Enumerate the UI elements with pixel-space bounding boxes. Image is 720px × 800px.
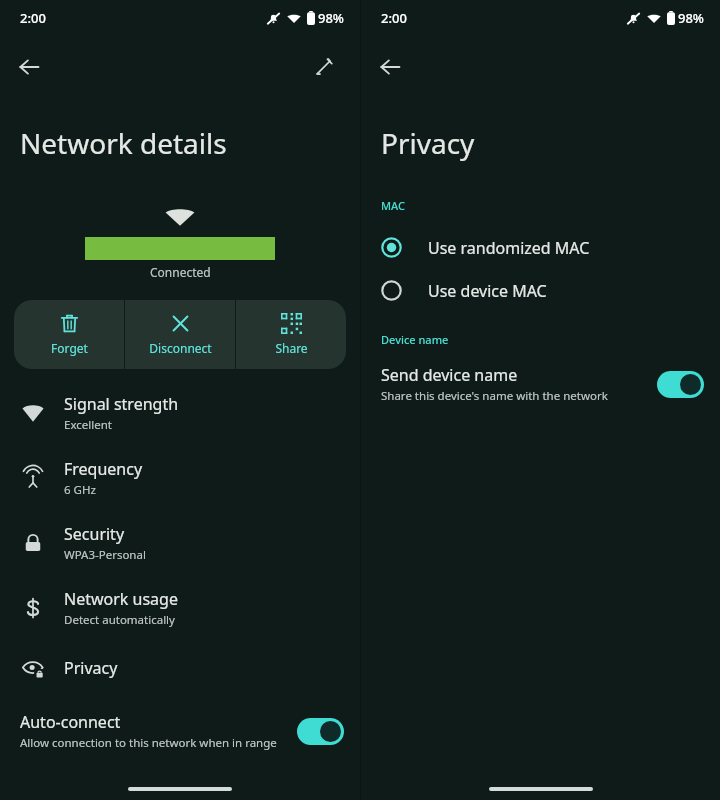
staticText: Security <box>64 523 125 545</box>
staticText: Share this device's name with the networ… <box>381 388 608 404</box>
staticText: Auto-connect <box>20 711 121 733</box>
staticText: Frequency <box>64 458 143 480</box>
staticText: Privacy <box>381 124 475 162</box>
staticText: 2:00 <box>381 9 407 27</box>
button[interactable]: Security <box>0 510 360 575</box>
staticText: Privacy <box>64 657 118 679</box>
staticText: Send device name <box>381 364 518 386</box>
staticText: Disconnect <box>149 340 212 356</box>
staticText: 6 GHz <box>64 482 96 498</box>
button[interactable]: Edit <box>302 45 346 89</box>
staticText: MAC <box>381 198 406 213</box>
staticText: 2:00 <box>20 9 46 27</box>
button[interactable]: Toggle on <box>657 371 704 398</box>
staticText: 98% <box>318 9 344 27</box>
staticText: Device name <box>381 332 449 347</box>
staticText: Use device MAC <box>428 280 547 302</box>
staticText: Excellent <box>64 417 112 433</box>
button[interactable]: Frequency <box>0 445 360 510</box>
button[interactable]: Privacy <box>0 640 360 696</box>
staticText: Forget <box>51 340 88 356</box>
staticText: Allow connection to this network when in… <box>20 735 277 751</box>
staticText: 98% <box>678 9 704 27</box>
button[interactable]: Use device MAC <box>361 269 720 312</box>
button[interactable]: Auto-connect <box>0 702 360 760</box>
button[interactable]: Share <box>236 300 346 369</box>
button[interactable]: Back <box>368 45 412 89</box>
button[interactable]: Disconnect <box>125 300 235 369</box>
staticText: Network details <box>20 124 227 162</box>
staticText: Detect automatically <box>64 612 175 628</box>
button[interactable]: Forget <box>14 300 124 369</box>
staticText: Network usage <box>64 588 178 610</box>
staticText: WPA3-Personal <box>64 547 146 563</box>
button[interactable]: Send device name <box>361 361 720 407</box>
button[interactable]: Toggle on <box>297 718 344 745</box>
staticText: Signal strength <box>64 393 179 415</box>
staticText: Share <box>275 340 308 356</box>
button[interactable]: Back <box>7 45 51 89</box>
button[interactable]: Network usage <box>0 575 360 640</box>
button[interactable]: Use randomized MAC <box>361 226 720 269</box>
staticText: Connected <box>150 264 211 280</box>
staticText: Use randomized MAC <box>428 237 590 259</box>
button[interactable]: Signal strength <box>0 380 360 445</box>
